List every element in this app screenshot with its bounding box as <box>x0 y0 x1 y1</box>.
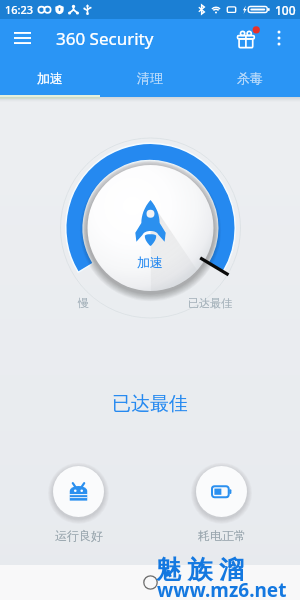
staticText: 杀毒 <box>237 70 263 86</box>
button[interactable]: More options <box>267 26 291 50</box>
button[interactable]: 加速 <box>0 57 100 97</box>
staticText: 耗电正常 <box>198 528 246 543</box>
staticText: 加速 <box>137 254 163 270</box>
staticText: 已达最佳 <box>0 392 300 416</box>
button[interactable]: Menu <box>9 25 35 51</box>
staticText: 魅 族 溜 <box>156 551 245 585</box>
button[interactable]: 耗电正常 <box>194 464 249 543</box>
button[interactable]: 杀毒 <box>200 57 300 97</box>
staticText: 100 <box>275 2 296 18</box>
staticText: 运行良好 <box>55 528 103 543</box>
button[interactable]: Gifts <box>233 24 261 52</box>
button[interactable]: 运行良好 <box>51 464 106 543</box>
staticText: 已达最佳 <box>188 296 232 310</box>
staticText: www.mz6.net <box>157 577 287 600</box>
button[interactable]: 清理 <box>100 57 200 97</box>
button[interactable]: Home <box>143 575 158 590</box>
staticText: 慢 <box>78 296 89 310</box>
staticText: 360 Security <box>56 27 154 50</box>
staticText: 清理 <box>137 70 163 86</box>
staticText: 16:23 <box>5 2 34 17</box>
staticText: 加速 <box>37 70 63 86</box>
